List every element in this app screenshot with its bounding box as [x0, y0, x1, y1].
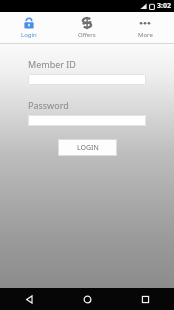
button[interactable]: [28, 115, 146, 126]
staticText: 3:02: [157, 1, 171, 11]
staticText: Login: [21, 31, 37, 39]
button[interactable]: LOGIN: [58, 139, 117, 156]
staticText: More: [138, 31, 153, 39]
button[interactable]: More: [116, 12, 174, 43]
staticText: Member ID: [28, 58, 76, 70]
staticText: Offers: [78, 31, 96, 39]
button[interactable]: [28, 74, 146, 85]
button[interactable]: Login: [0, 12, 58, 43]
staticText: LOGIN: [77, 143, 99, 153]
button[interactable]: Recents: [116, 288, 174, 310]
button[interactable]: Offers: [58, 12, 116, 43]
staticText: Password: [28, 99, 69, 111]
button[interactable]: Home: [58, 288, 116, 310]
button[interactable]: Back: [0, 288, 58, 310]
